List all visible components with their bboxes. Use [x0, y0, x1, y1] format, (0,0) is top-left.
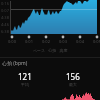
staticText: 0:05 [93, 39, 100, 44]
staticText: 0:02 [42, 39, 50, 44]
staticText: 6:38 [1, 29, 9, 34]
staticText: 156 [66, 71, 80, 82]
staticText: ペース 心拍 高度 [33, 48, 68, 53]
staticText: 平均 [21, 82, 29, 87]
staticText: 0:04 [76, 39, 84, 44]
staticText: 4:38 [1, 15, 9, 20]
staticText: 最大 [69, 82, 77, 87]
staticText: 121 [18, 71, 32, 82]
staticText: 0:03 [59, 39, 67, 44]
staticText: 0:16 [1, 1, 9, 6]
staticText: 心拍 (bpm) [2, 60, 28, 67]
staticText: 0:07 [1, 8, 9, 13]
staticText: 0:00 [8, 39, 16, 44]
staticText: 4:46 [1, 22, 9, 27]
staticText: 0:01 [25, 39, 33, 44]
